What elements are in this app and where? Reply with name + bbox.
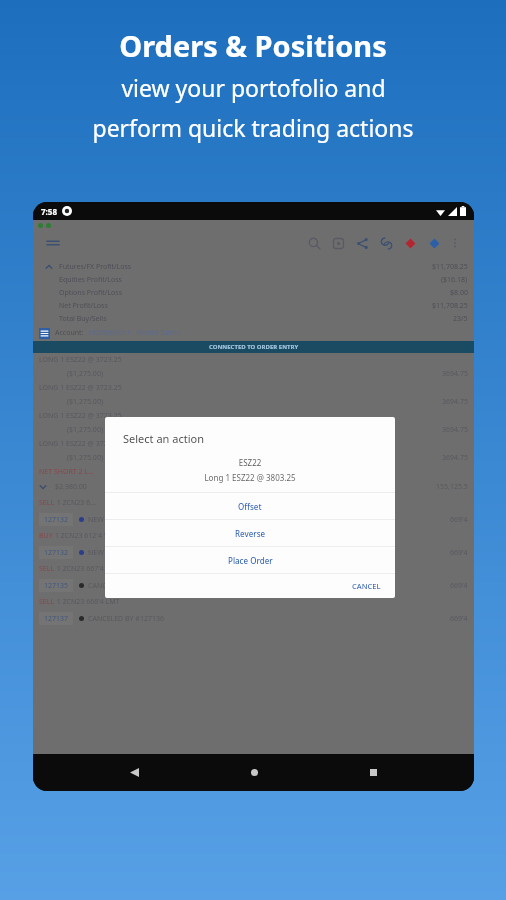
staticText: ($1,275.00) <box>67 397 103 407</box>
staticText: Total Buy/Sells <box>59 314 107 324</box>
staticText: LONG 1 ESZ22 @ 3723.25 <box>39 355 122 365</box>
button[interactable]: LONG 1 ESZ22 @ 3723.25 <box>33 437 474 465</box>
staticText: Select an action <box>123 431 204 446</box>
button[interactable]: Offset <box>105 493 395 519</box>
staticText: Net Profit/Loss <box>59 301 108 311</box>
staticText: 1 ZCN23 6... <box>55 498 96 508</box>
staticText: Long 1 ESZ22 @ 3803.25 <box>105 472 395 483</box>
staticText: ($1,275.00) <box>67 453 103 463</box>
button[interactable]: Menu <box>43 233 63 253</box>
button[interactable]: Place Order <box>105 547 395 573</box>
staticText: Orders & Positions <box>119 26 387 65</box>
button[interactable]: LONG 1 ESZ22 @ 3723.25 <box>33 409 474 437</box>
staticText: $11,708.25 <box>432 301 468 311</box>
button[interactable]: Recents <box>354 754 392 791</box>
staticText: Offset <box>238 501 262 512</box>
button[interactable]: Equities Profit/Loss <box>33 273 474 286</box>
button[interactable]: Net Profit/Loss <box>33 299 474 312</box>
staticText: LONG 1 ESZ22 @ 3723.25 <box>39 439 122 449</box>
staticText: $11,708.25 <box>432 262 468 272</box>
button[interactable]: Futures/FX Profit/Loss <box>33 260 474 273</box>
staticText: 127132 <box>44 548 69 558</box>
staticText: Options Profit/Loss <box>59 288 123 298</box>
staticText: CANCELED <box>88 581 124 591</box>
button[interactable]: Notes <box>326 231 350 255</box>
staticText: Futures/FX Profit/Loss <box>59 262 132 272</box>
staticText: Account: <box>55 328 84 338</box>
button[interactable]: Sync <box>374 231 398 255</box>
staticText: SELL <box>39 498 55 508</box>
button[interactable]: Reverse <box>105 520 395 546</box>
staticText: BUY <box>39 531 55 541</box>
staticText: Reverse <box>235 528 266 539</box>
staticText: 1 ZCN23 667'4 LMT <box>55 564 120 574</box>
staticText: 3694.75 <box>442 453 468 463</box>
staticText: NET SHORT 2 L... <box>39 467 94 477</box>
staticText: ESZ22 <box>105 457 395 468</box>
staticText: CANCELED BY #127136 <box>88 614 164 624</box>
staticText: LONG 1 ESZ22 @ 3723.25 <box>39 411 122 421</box>
staticText: 1 ZCN23 668'4 LMT <box>55 597 120 607</box>
staticText: 1 ZCN23 612'4 STOP <box>55 531 122 541</box>
staticText: CONNECTED TO ORDER ENTRY <box>209 343 299 351</box>
staticText: Equities Profit/Loss <box>59 275 122 285</box>
staticText: ($1,275.00) <box>67 425 103 435</box>
staticText: SELL <box>39 597 55 607</box>
staticText: 669'4 <box>450 614 468 624</box>
button[interactable]: Sell <box>398 231 422 255</box>
staticText: CANCEL <box>352 581 381 591</box>
staticText: 3694.75 <box>442 425 468 435</box>
staticText: NEW ORDER <box>88 548 129 558</box>
button[interactable]: SELL <box>33 561 474 594</box>
staticText: 669'4 <box>450 581 468 591</box>
staticText: ($16.18) <box>441 275 468 285</box>
button[interactable]: SELL <box>33 594 474 627</box>
staticText: $8.00 <box>450 288 468 298</box>
staticText: $2,980.00 <box>55 482 87 492</box>
button[interactable]: CANCEL <box>338 575 395 597</box>
button[interactable]: Search <box>302 231 326 255</box>
staticText: LONG 1 ESZ22 @ 3723.25 <box>39 383 122 393</box>
staticText: 127132 <box>44 515 69 525</box>
button[interactable]: SELL <box>33 495 474 528</box>
staticText: perform quick trading actions <box>92 112 414 143</box>
button[interactable]: Home <box>235 754 273 791</box>
button[interactable]: Buy <box>422 231 446 255</box>
button[interactable]: Share <box>350 231 374 255</box>
staticText: 155,125.5 <box>436 482 468 492</box>
staticText: NEW ORDER <box>88 515 129 525</box>
button[interactable]: $2,980.00 <box>33 479 474 495</box>
staticText: 23/5 <box>453 314 468 324</box>
button[interactable]: NET SHORT 2 L... <box>33 465 474 479</box>
button[interactable]: BUY <box>33 528 474 561</box>
staticText: ($1,275.00) <box>67 369 103 379</box>
staticText: view your portofolio and <box>121 72 386 103</box>
staticText: 127135 <box>44 581 69 591</box>
staticText: 669'4 <box>450 548 468 558</box>
staticText: Place Order <box>228 555 273 566</box>
staticText: 3694.75 <box>442 369 468 379</box>
staticText: SELL <box>39 564 55 574</box>
staticText: 16250@Sim1 - Mobile Demo <box>88 328 181 338</box>
staticText: 7:58 <box>41 206 57 217</box>
staticText: 127137 <box>44 614 69 624</box>
button[interactable]: Back <box>115 754 153 791</box>
button[interactable]: Options Profit/Loss <box>33 286 474 299</box>
staticText: 3694.75 <box>442 397 468 407</box>
staticText: 669'4 <box>450 515 468 525</box>
button[interactable]: Account: <box>33 325 474 341</box>
